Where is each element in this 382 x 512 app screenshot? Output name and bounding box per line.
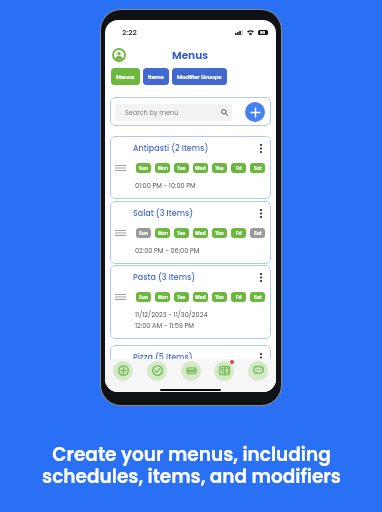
button[interactable]: Salat (3 Items) [110, 201, 271, 264]
button[interactable]: Items [143, 68, 169, 85]
button[interactable]: Fri [231, 228, 246, 238]
staticText: Pizza (5 Items) [133, 352, 193, 363]
button[interactable]: Thu [212, 163, 227, 173]
button[interactable]: More options [256, 143, 266, 154]
button[interactable]: Fri [231, 372, 246, 382]
staticText: 11/12/2023 - 11/30/2024 [135, 310, 208, 319]
button[interactable]: Sat [250, 372, 265, 382]
staticText: Menus [116, 73, 135, 81]
button[interactable]: Add menu [245, 102, 265, 122]
button[interactable]: Search by menu [115, 104, 232, 121]
button[interactable]: Add [111, 360, 135, 381]
button[interactable]: Sun [136, 163, 151, 173]
staticText: 2:22 [122, 27, 137, 37]
staticText: Fri [236, 165, 242, 171]
button[interactable]: Tue [174, 372, 189, 382]
staticText: Sun [139, 294, 148, 300]
button[interactable]: Menus [111, 68, 140, 85]
staticText: Thu [215, 374, 224, 380]
staticText: Create your menus, including schedules, … [42, 442, 341, 490]
button[interactable]: Menu [212, 360, 236, 381]
staticText: Wed [195, 294, 206, 300]
staticText: Menus [172, 48, 209, 63]
staticText: Sat [254, 165, 262, 171]
button[interactable]: More options [256, 208, 266, 219]
button[interactable]: Pizza (5 Items) [110, 345, 271, 392]
button[interactable]: Sun [136, 292, 151, 302]
staticText: Wed [195, 374, 206, 380]
button[interactable]: Sat [250, 228, 265, 238]
button[interactable]: Mon [155, 372, 170, 382]
button[interactable]: Tue [174, 163, 189, 173]
button[interactable]: Fri [231, 163, 246, 173]
button[interactable]: Mon [155, 292, 170, 302]
staticText: Tue [177, 165, 186, 171]
button[interactable]: Sat [250, 292, 265, 302]
staticText: Items [148, 73, 164, 81]
staticText: 90 [260, 30, 266, 35]
staticText: Wed [195, 230, 206, 236]
staticText: Fri [236, 230, 242, 236]
button[interactable]: Sun [136, 372, 151, 382]
staticText: 02:00 PM - 06:00 PM [135, 246, 200, 255]
button[interactable]: Thu [212, 228, 227, 238]
button[interactable]: More options [256, 272, 266, 283]
staticText: Modifier Groups [177, 73, 222, 81]
button[interactable]: Tue [174, 292, 189, 302]
button[interactable]: Orders [145, 360, 169, 381]
staticText: Thu [215, 165, 224, 171]
staticText: Mon [158, 230, 168, 236]
staticText: Antipasti (2 Items) [133, 143, 209, 154]
staticText: Fri [236, 294, 242, 300]
staticText: Thu [215, 294, 224, 300]
staticText: Pasta (3 Items) [133, 272, 196, 283]
staticText: Sun [139, 230, 148, 236]
staticText: Thu [215, 230, 224, 236]
staticText: Mon [158, 165, 168, 171]
staticText: Sat [254, 230, 262, 236]
button[interactable]: Tables [179, 360, 203, 381]
button[interactable]: Mon [155, 228, 170, 238]
button[interactable]: Sun [136, 228, 151, 238]
button[interactable]: Profile [111, 47, 127, 63]
button[interactable]: Antipasti (2 Items) [110, 136, 271, 199]
staticText: Tue [177, 230, 186, 236]
button[interactable]: Wed [193, 372, 208, 382]
staticText: Sat [254, 294, 262, 300]
staticText: Salat (3 Items) [133, 208, 194, 219]
button[interactable]: More options [256, 352, 266, 363]
staticText: Wed [195, 165, 206, 171]
button[interactable]: Fri [231, 292, 246, 302]
button[interactable]: Mon [155, 163, 170, 173]
staticText: Tue [177, 294, 186, 300]
button[interactable]: Pasta (3 Items) [110, 265, 271, 339]
button[interactable]: Thu [212, 372, 227, 382]
button[interactable]: Thu [212, 292, 227, 302]
button[interactable]: Wed [193, 292, 208, 302]
staticText: Mon [158, 294, 168, 300]
button[interactable]: Wed [193, 228, 208, 238]
button[interactable]: Sat [250, 163, 265, 173]
staticText: 01:00 PM - 10:00 PM [135, 390, 196, 392]
button[interactable]: Tue [174, 228, 189, 238]
button[interactable]: Modifier Groups [172, 68, 227, 85]
staticText: Sat [254, 374, 262, 380]
button[interactable]: Wed [193, 163, 208, 173]
staticText: Tue [177, 374, 186, 380]
staticText: Sun [139, 165, 148, 171]
staticText: Mon [158, 374, 168, 380]
staticText: Search by menu [125, 108, 179, 117]
staticText: 01:00 PM - 10:00 PM [135, 181, 196, 190]
staticText: 12:00 AM - 11:59 PM [135, 321, 194, 330]
button[interactable]: Chat [246, 360, 270, 381]
